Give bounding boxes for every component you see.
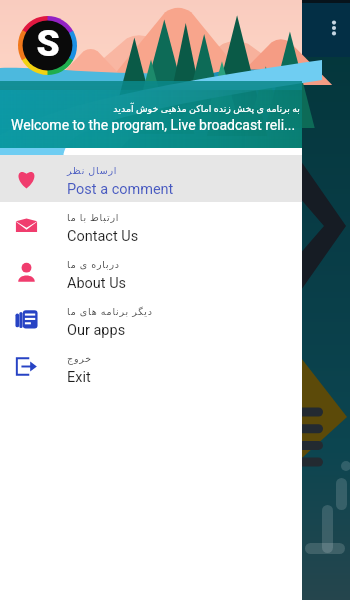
staticText: Exit [67,369,91,386]
staticText: Welcome to the program, Live broadcast r… [11,117,296,133]
button[interactable]: More options [319,13,349,43]
staticText: Contact Us [67,228,139,245]
button[interactable]: ارسال نظر [0,155,302,202]
staticText: About Us [67,275,127,292]
button[interactable]: دیگر برنامه های ما [0,296,302,343]
staticText: دیگر برنامه های ما [67,306,153,317]
staticText: S [36,22,60,65]
staticText: به برنامه ی پخش زنده اماکن مذهبی خوش آمد… [11,103,300,114]
button[interactable]: درباره ی ما [0,249,302,296]
button[interactable]: ارتباط با ما [0,202,302,249]
staticText: Post a comment [67,181,174,198]
staticText: خروج [67,353,93,364]
button[interactable]: خروج [0,343,302,390]
staticText: Our apps [67,322,126,339]
staticText: ارتباط با ما [67,212,120,223]
staticText: ارسال نظر [67,165,118,176]
staticText: درباره ی ما [67,259,120,270]
